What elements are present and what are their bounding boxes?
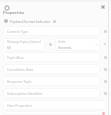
staticText: Subscription Identifier xyxy=(7,91,43,96)
button[interactable]: Settings xyxy=(3,4,10,11)
button[interactable]: Message Expiry Interval xyxy=(3,38,45,51)
button[interactable]: Info xyxy=(100,88,110,98)
button[interactable]: Info xyxy=(100,76,110,86)
button[interactable]: Close xyxy=(99,3,106,10)
staticText: Message Expiry Interval xyxy=(7,40,41,44)
button[interactable]: Info xyxy=(100,26,110,36)
button[interactable]: Subscription Identifier xyxy=(3,88,100,98)
button[interactable]: Response Topic xyxy=(3,76,100,86)
staticText: Topic Alias xyxy=(7,55,24,60)
staticText: Content Type xyxy=(7,29,29,34)
button[interactable]: Info xyxy=(100,52,110,62)
staticText: Units xyxy=(58,40,66,44)
button[interactable] xyxy=(5,111,99,115)
button[interactable]: Units xyxy=(55,38,100,51)
button[interactable]: Remove property xyxy=(100,111,107,115)
staticText: Seconds xyxy=(58,45,72,50)
button[interactable]: Topic Alias xyxy=(3,52,100,62)
staticText: User Properties xyxy=(7,103,32,108)
button[interactable]: Info xyxy=(100,64,110,74)
button[interactable]: Info xyxy=(100,39,110,49)
button[interactable]: Correlation Data xyxy=(3,64,100,74)
button[interactable]: Info xyxy=(45,39,55,49)
button[interactable]: User Properties xyxy=(3,100,106,110)
staticText: 60 xyxy=(7,45,11,50)
button[interactable]: Payload Format Indicator xyxy=(0,17,56,25)
staticText: Payload Format Indicator xyxy=(10,19,51,24)
staticText: Response Topic xyxy=(7,79,32,84)
button[interactable]: Content Type xyxy=(3,26,100,36)
staticText: Properties xyxy=(3,10,25,16)
staticText: Correlation Data xyxy=(7,67,34,72)
